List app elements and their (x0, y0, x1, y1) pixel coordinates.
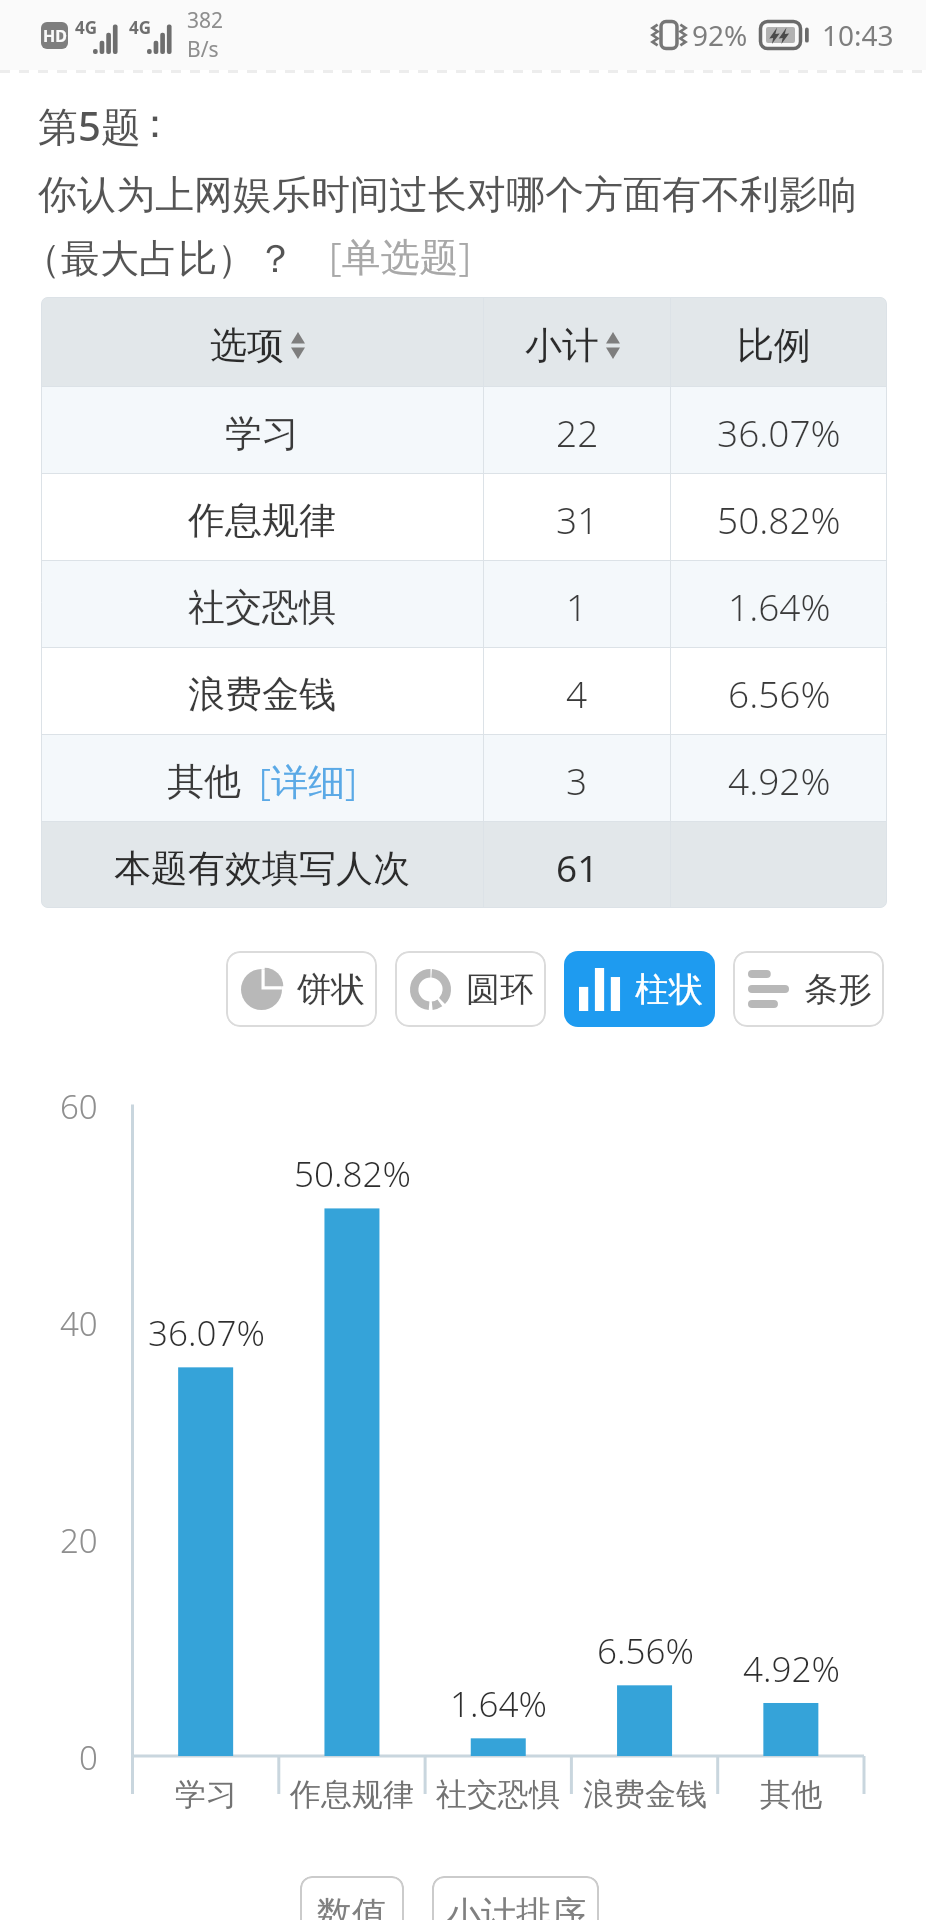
staticText: 20 (60, 1518, 98, 1563)
staticText: 浪费金钱 (188, 671, 336, 718)
staticText: 4.92% (743, 1645, 840, 1693)
button[interactable]: 柱状 (564, 951, 715, 1027)
staticText: 4.92% (728, 755, 831, 805)
staticText: 饼状 (297, 968, 365, 1011)
button[interactable]: 饼状 (226, 951, 377, 1027)
staticText: 31 (556, 494, 599, 544)
button[interactable]: 浪费金钱 (41, 648, 887, 734)
staticText: 其他 (167, 758, 241, 805)
staticText: 3 (566, 755, 588, 805)
staticText: 92% (692, 16, 748, 54)
other: Sort (291, 332, 305, 359)
staticText: 圆环 (466, 968, 534, 1011)
staticText: 1.64% (450, 1680, 547, 1728)
staticText: 你认为上网娱乐时间过长对哪个方面有不利影响 (38, 170, 857, 219)
staticText: ： (135, 98, 175, 148)
staticText: 学习 (175, 1775, 237, 1814)
staticText: 22 (556, 407, 599, 457)
staticText: 作息规律 (290, 1775, 414, 1814)
staticText: 382 (187, 6, 224, 35)
staticText: HD (43, 25, 67, 47)
staticText: 小计排序 (446, 1892, 586, 1920)
button[interactable]: 小计排序 (432, 1876, 599, 1920)
button[interactable]: 数值 (300, 1876, 404, 1920)
staticText: [详细] (259, 755, 357, 806)
staticText: 本题有效填写人次 (114, 845, 410, 892)
staticText: 50.82% (294, 1150, 411, 1198)
staticText: 6.56% (597, 1627, 694, 1675)
staticText: 浪费金钱 (583, 1775, 707, 1814)
staticText: 36.07% (717, 407, 841, 457)
staticText: 0 (79, 1735, 98, 1780)
staticText: 40 (60, 1301, 98, 1346)
staticText: 4G (129, 16, 152, 39)
other: Battery charging 92 percent (759, 20, 809, 50)
staticText: （最大占比）？ (22, 234, 295, 283)
staticText: 第5题 (38, 98, 141, 153)
staticText: 50.82% (717, 494, 841, 544)
staticText: 其他 (760, 1775, 822, 1814)
staticText: 36.07% (148, 1309, 265, 1357)
staticText: 比例 (737, 322, 811, 369)
staticText: 61 (556, 842, 599, 892)
staticText: [单选题] (329, 229, 472, 282)
other: Vibrate mode (650, 15, 688, 55)
staticText: 学习 (225, 410, 299, 457)
staticText: 60 (60, 1084, 98, 1129)
staticText: 作息规律 (188, 497, 336, 544)
button[interactable]: 作息规律 (41, 474, 887, 560)
staticText: 社交恐惧 (436, 1775, 560, 1814)
button[interactable]: 社交恐惧 (41, 561, 887, 647)
button[interactable]: 其他 (41, 735, 887, 821)
staticText: 社交恐惧 (188, 584, 336, 631)
staticText: B/s (187, 35, 219, 64)
staticText: 4 (566, 668, 588, 718)
other: Sort (606, 332, 620, 359)
button[interactable]: 学习 (41, 387, 887, 473)
button[interactable]: 选项 (210, 322, 305, 369)
staticText: 1.64% (728, 581, 831, 631)
staticText: 1 (566, 581, 588, 631)
staticText: 数值 (317, 1892, 387, 1920)
staticText: 柱状 (635, 968, 703, 1011)
staticText: 条形 (804, 968, 872, 1011)
staticText: 小计 (525, 322, 599, 369)
staticText: 4G (75, 16, 98, 39)
staticText: 选项 (210, 322, 284, 369)
button[interactable]: 圆环 (395, 951, 546, 1027)
button[interactable]: 小计 (525, 322, 620, 369)
staticText: 10:43 (822, 16, 894, 54)
button[interactable]: 比例 (737, 322, 811, 369)
button[interactable]: 条形 (733, 951, 884, 1027)
staticText: 6.56% (728, 668, 831, 718)
